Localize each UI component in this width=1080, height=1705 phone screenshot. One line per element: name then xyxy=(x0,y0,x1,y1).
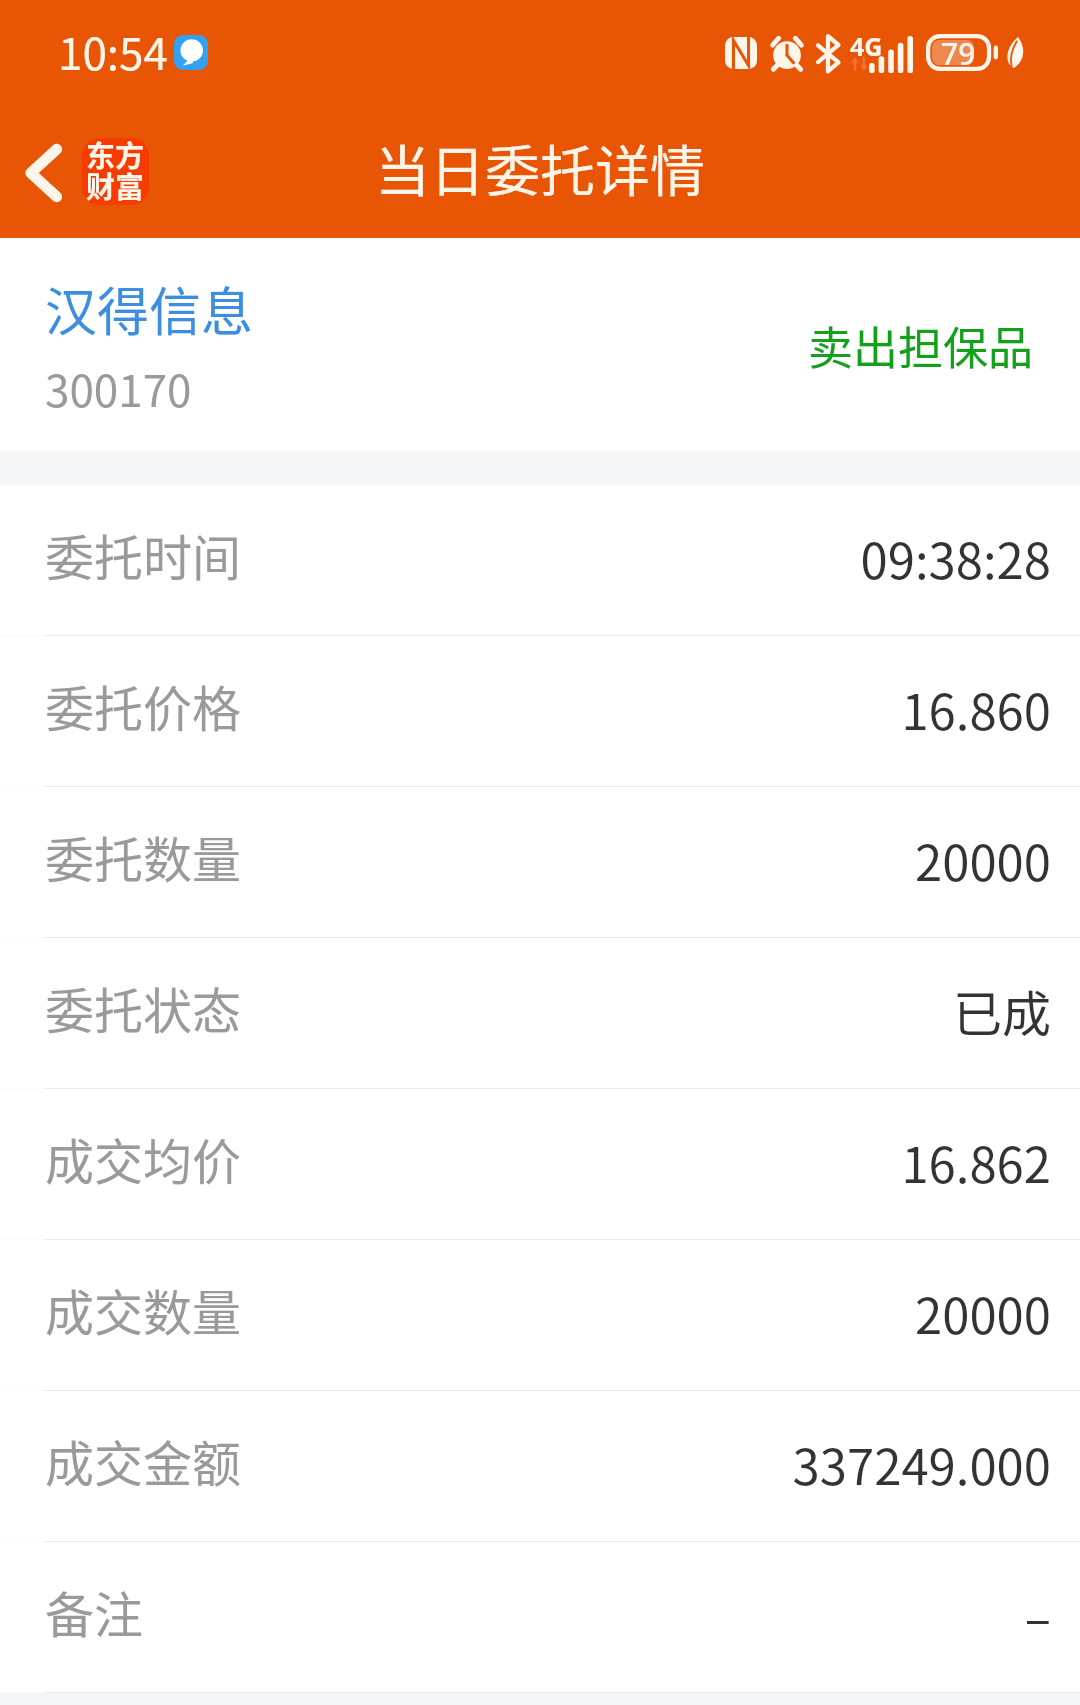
other: Bluetooth xyxy=(816,35,841,72)
staticText: 委托时间 xyxy=(45,519,242,590)
other: Alarm xyxy=(769,35,805,71)
button[interactable]: Back xyxy=(0,117,86,227)
button[interactable]: 委托数量 xyxy=(0,787,1080,937)
other: Mobile signal 4G xyxy=(850,33,913,73)
staticText: 当日委托详情 xyxy=(375,127,706,207)
other: Battery 79 percent xyxy=(926,34,998,71)
staticText: – xyxy=(1024,1579,1051,1650)
staticText: 成交数量 xyxy=(45,1274,242,1345)
staticText: 20000 xyxy=(915,1277,1051,1348)
staticText: 09:38:28 xyxy=(860,522,1051,593)
staticText: 20000 xyxy=(915,824,1051,895)
button[interactable]: 成交数量 xyxy=(0,1240,1080,1390)
staticText: 79 xyxy=(941,33,976,70)
staticText: 成交均价 xyxy=(45,1123,242,1194)
button[interactable]: 委托价格 xyxy=(0,636,1080,786)
button[interactable]: 委托状态 xyxy=(0,938,1080,1088)
staticText: 已成 xyxy=(952,975,1051,1046)
button[interactable]: 成交金额 xyxy=(0,1391,1080,1541)
staticText: 汉得信息 xyxy=(45,271,254,346)
staticText: 备注 xyxy=(45,1576,144,1647)
staticText: 财富 xyxy=(86,164,145,205)
other: Power saving xyxy=(1004,37,1024,68)
staticText: 337249.000 xyxy=(792,1428,1051,1499)
staticText: 16.862 xyxy=(901,1126,1051,1197)
other: NFC xyxy=(725,37,757,69)
staticText: 10:54 xyxy=(58,19,168,83)
button[interactable]: 备注 xyxy=(0,1542,1080,1692)
staticText: 委托状态 xyxy=(45,972,242,1043)
staticText: 4G xyxy=(850,29,883,63)
staticText: 300170 xyxy=(45,356,192,420)
button[interactable]: 委托时间 xyxy=(0,485,1080,635)
staticText: 卖出担保品 xyxy=(808,313,1034,378)
staticText: 委托数量 xyxy=(45,821,242,892)
button[interactable]: East Money logo xyxy=(82,138,149,205)
button[interactable]: 汉得信息 xyxy=(0,238,1080,451)
staticText: 16.860 xyxy=(901,673,1051,744)
staticText: 成交金额 xyxy=(45,1425,242,1496)
button[interactable]: 成交均价 xyxy=(0,1089,1080,1239)
staticText: 委托价格 xyxy=(45,670,242,741)
staticText: 东方 xyxy=(86,138,145,175)
